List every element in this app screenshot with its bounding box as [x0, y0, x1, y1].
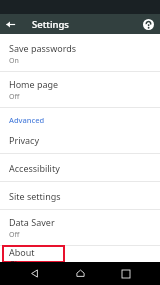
staticText: Advanced	[9, 115, 45, 125]
button[interactable]: Home	[68, 262, 92, 285]
staticText: Off	[9, 230, 20, 240]
button[interactable]: Data Saver	[0, 210, 160, 245]
staticText: Site settings	[9, 190, 61, 202]
staticText: Off	[9, 92, 20, 102]
button[interactable]: Help	[138, 14, 158, 34]
button[interactable]: Privacy	[0, 126, 160, 153]
staticText: Privacy	[9, 134, 40, 146]
staticText: Accessibility	[9, 162, 60, 174]
button[interactable]: Back	[0, 14, 20, 34]
staticText: Data Saver	[9, 216, 55, 228]
button[interactable]: About Chrome	[0, 246, 160, 262]
button[interactable]: Save passwords	[0, 36, 160, 71]
staticText: Settings	[32, 18, 69, 31]
button[interactable]: Home page	[0, 72, 160, 107]
staticText: On	[9, 56, 19, 66]
staticText: About Chrome	[9, 246, 64, 262]
button[interactable]: Recent apps	[114, 262, 138, 285]
staticText: Home page	[9, 78, 59, 90]
button[interactable]: Site settings	[0, 182, 160, 209]
button[interactable]: Accessibility	[0, 154, 160, 181]
button[interactable]: Back	[22, 262, 46, 285]
staticText: Save passwords	[9, 42, 77, 54]
